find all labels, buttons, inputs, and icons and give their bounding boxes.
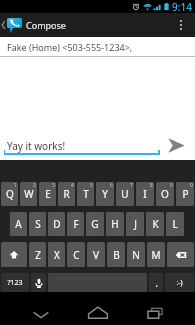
button[interactable]: C	[67, 242, 85, 267]
button[interactable]: :-)	[165, 273, 194, 293]
staticText: B	[113, 248, 120, 262]
button[interactable]: J	[126, 212, 144, 236]
staticText: O	[161, 187, 169, 201]
staticText: V	[93, 248, 99, 262]
button[interactable]: O	[156, 182, 174, 206]
staticText: U	[121, 187, 129, 201]
staticText: :-)	[176, 278, 183, 288]
button[interactable]: B	[107, 242, 125, 267]
staticText: Compose	[26, 19, 66, 31]
button[interactable]: I	[136, 182, 154, 206]
button[interactable]: Q	[1, 182, 18, 206]
staticText: 1	[14, 182, 17, 189]
staticText: H	[111, 217, 119, 231]
button[interactable]: K	[146, 212, 164, 236]
staticText: C	[73, 248, 80, 262]
button[interactable]: V	[87, 242, 105, 267]
staticText: 6	[110, 182, 113, 189]
staticText: M	[151, 248, 161, 262]
button[interactable]: R	[58, 182, 75, 206]
button[interactable]: .	[149, 273, 163, 293]
button[interactable]: ?123	[1, 273, 29, 293]
button[interactable]: Z	[29, 242, 46, 267]
staticText: I	[143, 187, 147, 201]
button[interactable]: X	[48, 242, 65, 267]
staticText: X	[54, 248, 60, 262]
button[interactable]: Backspace	[167, 242, 194, 267]
staticText: Yay it works!	[7, 139, 66, 153]
button[interactable]: G	[86, 212, 104, 236]
staticText: J	[134, 217, 137, 231]
staticText: N	[132, 248, 140, 262]
staticText: A	[15, 217, 22, 231]
button[interactable]: Voice input	[31, 273, 46, 293]
staticText: Z	[35, 248, 41, 262]
button[interactable]: Y	[96, 182, 114, 206]
staticText: P	[182, 187, 189, 201]
button[interactable]: F	[67, 212, 84, 236]
button[interactable]: Shift	[1, 242, 27, 267]
button[interactable]: Navigate up	[0, 13, 7, 37]
button[interactable]: Send	[160, 132, 195, 160]
staticText: D	[53, 217, 61, 231]
staticText: E	[45, 187, 51, 201]
staticText: ?123	[7, 278, 23, 288]
button[interactable]: H	[106, 212, 124, 236]
staticText: .	[155, 276, 158, 290]
staticText: T	[83, 187, 89, 201]
button[interactable]: D	[48, 212, 65, 236]
staticText: 9:14	[172, 0, 192, 13]
button[interactable]: Hide keyboard	[17, 292, 64, 325]
staticText: W	[24, 187, 34, 201]
button[interactable]: U	[116, 182, 134, 206]
staticText: Fake (Home) <503-555-1234>,	[7, 41, 133, 53]
staticText: 9	[170, 182, 173, 189]
staticText: 4	[71, 182, 74, 189]
staticText: 5	[90, 182, 93, 189]
staticText: 8	[150, 182, 153, 189]
button[interactable]: Recent apps	[131, 292, 178, 325]
staticText: F	[73, 217, 79, 231]
button[interactable]: A	[10, 212, 27, 236]
button[interactable]: E	[39, 182, 56, 206]
button[interactable]: P	[176, 182, 194, 206]
button[interactable]: W	[20, 182, 37, 206]
staticText: S	[35, 217, 41, 231]
button[interactable]: M	[147, 242, 165, 267]
button[interactable]: Home	[74, 292, 122, 325]
button[interactable]: L	[166, 212, 184, 236]
staticText: K	[152, 217, 159, 231]
staticText: G	[91, 217, 99, 231]
button[interactable]	[48, 273, 147, 293]
staticText: Y	[102, 187, 108, 201]
staticText: R	[63, 187, 70, 201]
button[interactable]: T	[77, 182, 94, 206]
staticText: 7	[130, 182, 133, 189]
button[interactable]: More options	[166, 13, 195, 37]
staticText: Q	[6, 187, 14, 201]
staticText: L	[172, 217, 178, 231]
staticText: 0	[190, 182, 193, 189]
staticText: 2	[33, 182, 36, 189]
staticText: 3	[52, 182, 55, 189]
button[interactable]: N	[127, 242, 145, 267]
button[interactable]: Fake (Home) <503-555-1234>,	[0, 37, 195, 56]
button[interactable]: S	[29, 212, 46, 236]
